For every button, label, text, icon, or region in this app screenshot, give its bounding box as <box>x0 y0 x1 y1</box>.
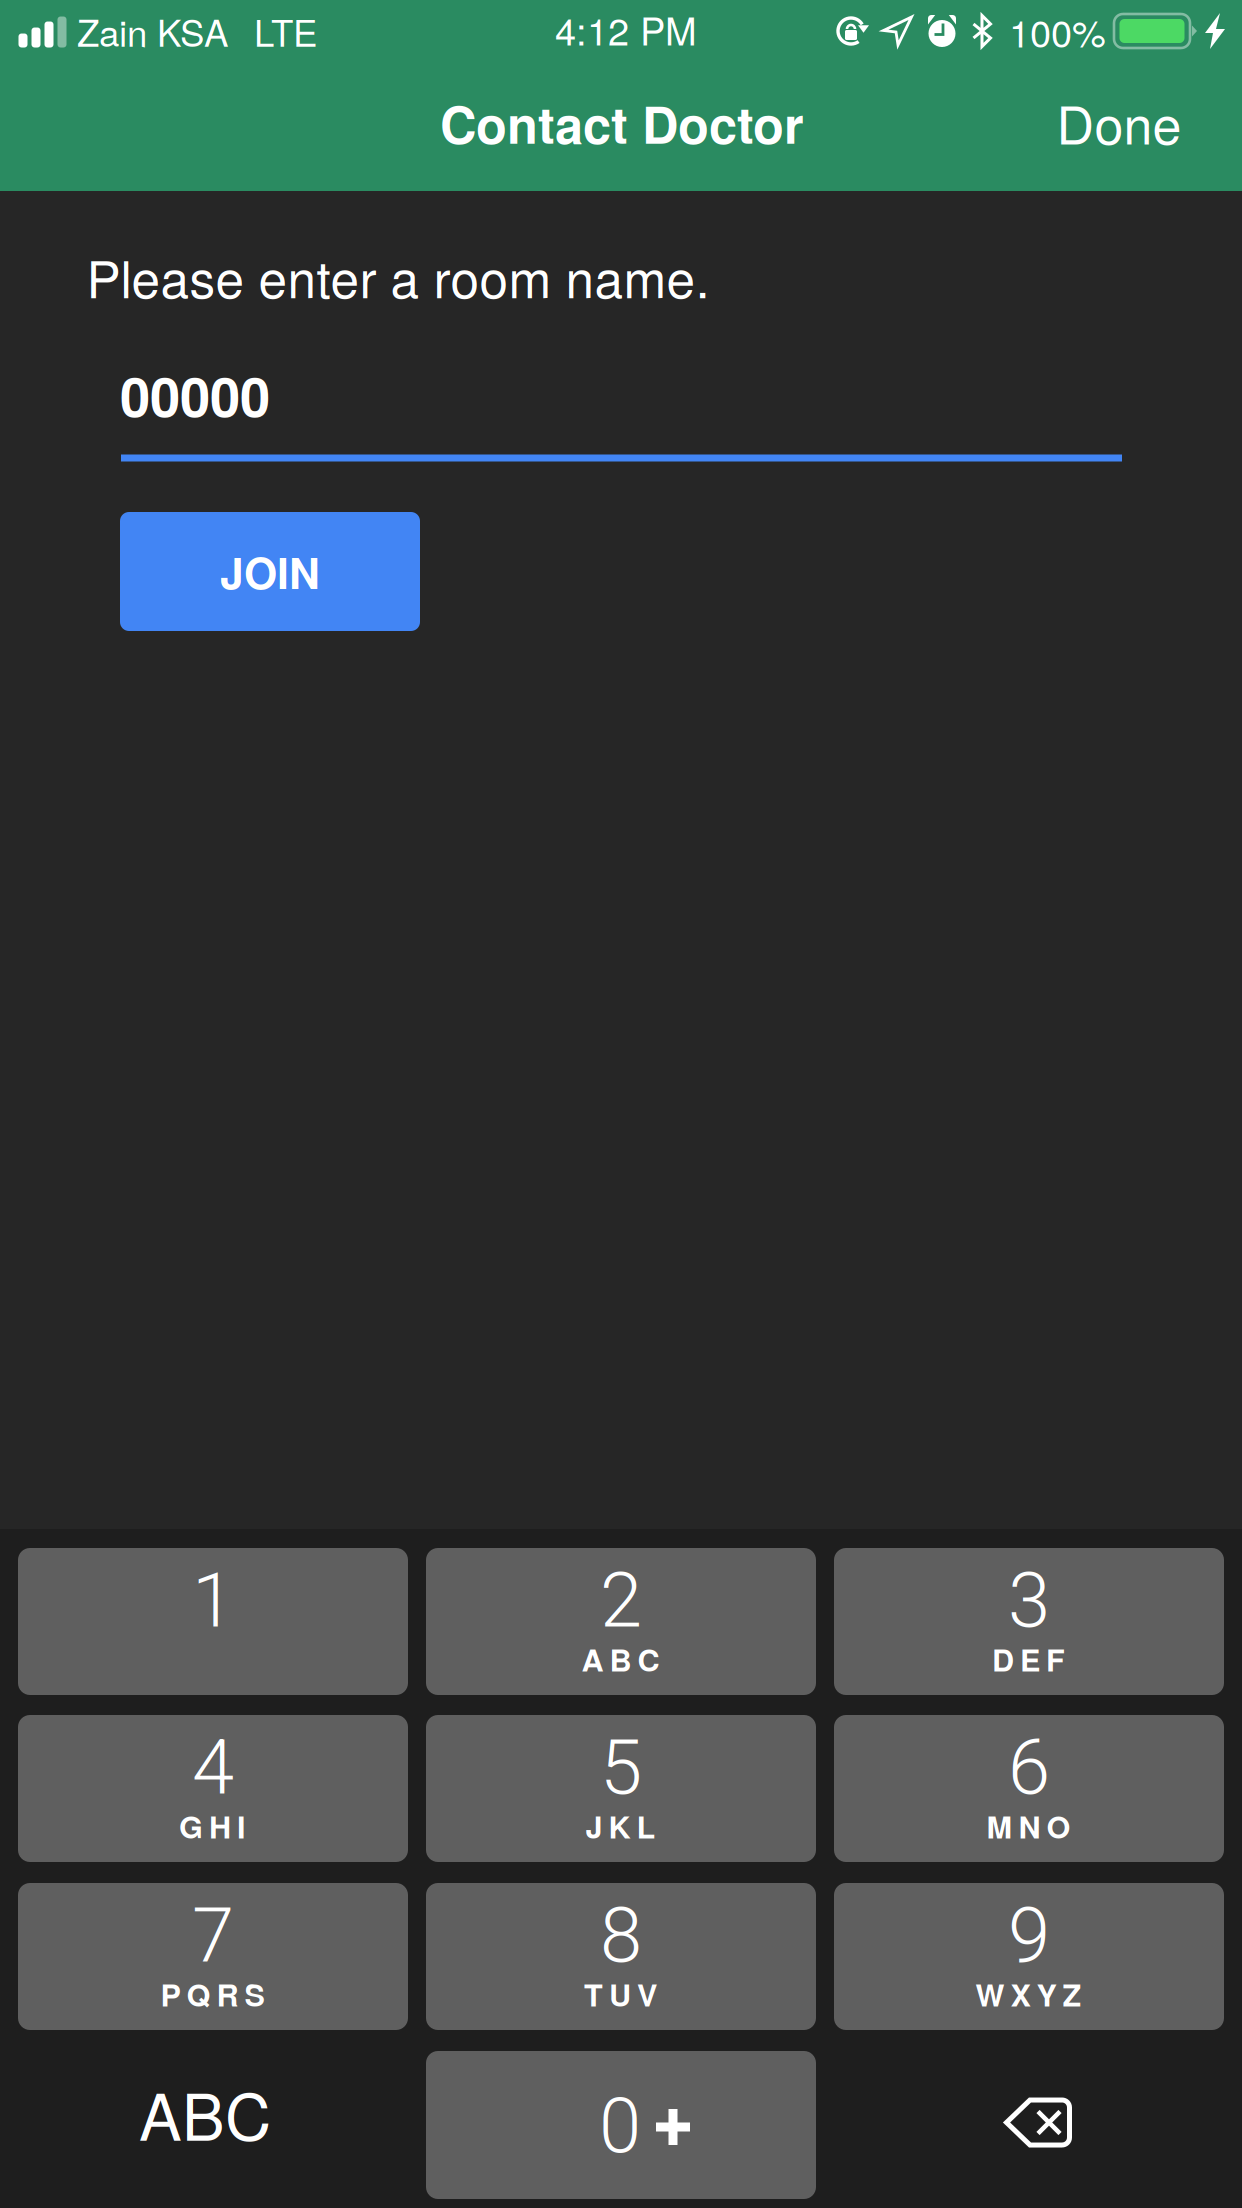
staticText: PQRS <box>160 1972 264 2016</box>
staticText: Contact Doctor <box>440 87 804 159</box>
staticText: 00000 <box>120 356 270 433</box>
button[interactable]: 0 <box>426 2051 816 2199</box>
staticText: Please enter a room name. <box>86 239 709 313</box>
staticText: 0 <box>599 2081 641 2171</box>
button[interactable]: 9 <box>834 1883 1224 2030</box>
button[interactable]: Done <box>1031 77 1181 167</box>
staticText: 2 <box>600 1556 642 1645</box>
staticText: 8 <box>600 1891 642 1980</box>
staticText: 4 <box>192 1723 234 1812</box>
button[interactable]: 8 <box>426 1883 816 2030</box>
button[interactable]: 6 <box>834 1715 1224 1862</box>
staticText: Done <box>1056 85 1181 159</box>
staticText: WXYZ <box>975 1972 1081 2016</box>
staticText: TUV <box>584 1972 657 2016</box>
staticText: 5 <box>600 1723 642 1812</box>
staticText: JKL <box>585 1804 655 1848</box>
staticText: LTE <box>254 5 317 57</box>
button[interactable]: 4 <box>18 1715 408 1862</box>
staticText: 1 <box>192 1556 234 1645</box>
button[interactable]: Delete <box>834 2051 1224 2199</box>
button[interactable]: 3 <box>834 1548 1224 1695</box>
staticText: DEF <box>992 1637 1065 1681</box>
staticText: 9 <box>1008 1891 1050 1980</box>
button[interactable]: JOIN <box>120 512 420 631</box>
staticText: 6 <box>1008 1723 1050 1812</box>
staticText: 7 <box>192 1891 234 1980</box>
staticText: ABC <box>581 1637 659 1681</box>
button[interactable]: 7 <box>18 1883 408 2030</box>
staticText: GHI <box>179 1804 246 1848</box>
button[interactable]: 5 <box>426 1715 816 1862</box>
staticText: 4:12 PM <box>555 2 697 56</box>
staticText: Zain KSA <box>77 5 228 57</box>
staticText: MNO <box>986 1804 1070 1848</box>
staticText: 100% <box>1009 4 1106 58</box>
button[interactable]: ABC <box>18 2051 408 2199</box>
staticText: 3 <box>1008 1556 1050 1645</box>
staticText: JOIN <box>220 541 320 602</box>
staticText: ABC <box>139 2067 271 2159</box>
button[interactable]: 1 <box>18 1548 408 1695</box>
button[interactable]: 2 <box>426 1548 816 1695</box>
